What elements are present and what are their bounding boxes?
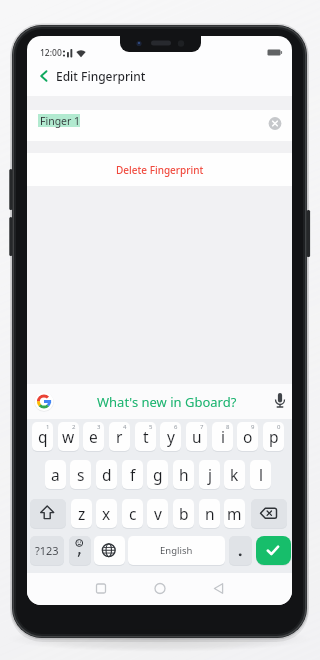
staticText: 1	[46, 423, 50, 431]
staticText: 7	[200, 423, 204, 431]
staticText: 4	[123, 423, 127, 431]
staticText: ?123	[35, 543, 59, 558]
staticText: g	[153, 464, 163, 485]
staticText: d	[102, 464, 112, 485]
staticText: b	[179, 503, 189, 524]
staticText: o	[243, 426, 253, 447]
staticText: p	[269, 426, 279, 447]
staticText: Edit Fingerprint	[56, 68, 146, 84]
staticText: 12:00	[40, 47, 62, 59]
staticText: English	[160, 544, 193, 557]
staticText: a	[51, 464, 60, 485]
staticText: k	[230, 464, 239, 485]
staticText: e	[89, 426, 98, 447]
staticText: 6	[174, 423, 178, 431]
staticText: w	[62, 426, 75, 447]
staticText: 5	[149, 423, 153, 431]
staticText: i	[221, 426, 225, 447]
staticText: x	[102, 503, 111, 524]
staticText: n	[205, 503, 215, 524]
staticText: q	[38, 426, 48, 447]
staticText: y	[167, 426, 175, 447]
staticText: u	[192, 426, 202, 447]
staticText: Delete Fingerprint	[116, 163, 204, 177]
staticText: z	[78, 503, 86, 524]
staticText: 3	[97, 423, 101, 431]
staticText: 8	[226, 423, 230, 431]
staticText: h	[179, 464, 189, 485]
staticText: v	[154, 503, 162, 524]
staticText: 9	[251, 423, 255, 431]
staticText: 2	[72, 423, 76, 431]
staticText: m	[227, 503, 242, 524]
staticText: s	[77, 464, 85, 485]
staticText: Finger 1	[40, 114, 81, 128]
staticText: l	[259, 464, 263, 485]
staticText: 0	[277, 423, 281, 431]
staticText: r	[116, 426, 123, 447]
staticText: j	[208, 464, 212, 485]
staticText: What's new in Gboard?	[97, 393, 237, 411]
staticText: f	[130, 464, 136, 485]
staticText: c	[129, 503, 137, 524]
staticText: t	[143, 426, 149, 447]
